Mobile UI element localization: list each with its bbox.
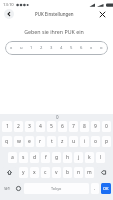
staticText: 13:10 [3,2,14,8]
staticText: 9 [94,123,97,130]
staticText: 0 [105,123,108,130]
staticText: s [22,154,25,161]
staticText: e [28,138,31,145]
staticText: 0 [56,114,59,120]
staticText: i [84,138,86,145]
staticText: q [5,138,9,145]
staticText: 5 [70,45,73,51]
button[interactable]: n [74,167,83,178]
button[interactable]: Emoji [14,183,22,194]
button[interactable]: p [102,136,111,147]
staticText: !#© [4,186,11,191]
button[interactable]: g [52,152,61,163]
button[interactable]: 1 [2,121,12,132]
staticText: p [105,138,109,145]
button[interactable]: c [41,167,50,178]
button[interactable]: 7 [69,121,78,132]
staticText: 3 [50,45,53,51]
staticText: c [44,169,47,176]
button[interactable]: e [25,136,34,147]
button[interactable]: f [41,152,50,163]
button[interactable]: m [85,167,94,178]
button[interactable]: b [63,167,72,178]
staticText: z [61,138,64,145]
staticText: 2 [40,45,43,51]
staticText: 8 [83,123,86,130]
staticText: g [55,154,59,161]
button[interactable]: 4 [36,121,45,132]
staticText: v [55,169,58,176]
staticText: 3 [28,123,31,130]
button[interactable]: v [52,167,61,178]
button[interactable]: z [58,136,67,147]
button[interactable]: 5 [47,121,56,132]
button[interactable]: i [80,136,89,147]
staticText: t [51,138,53,145]
staticText: k [88,154,91,161]
staticText: h [66,154,70,161]
staticText: n [77,169,81,176]
button[interactable]: !#© [2,183,12,194]
staticText: b [66,169,70,176]
staticText: PUK Einstellungen [35,11,74,17]
staticText: 4 [39,123,42,130]
staticText: x [10,45,13,51]
staticText: Geben sie ihren PUK ein [24,28,84,35]
button[interactable]: 9 [91,121,100,132]
button[interactable]: q [2,136,12,147]
staticText: x [33,169,36,176]
button[interactable]: s [19,152,28,163]
button[interactable]: t [47,136,56,147]
button[interactable]: 3 [25,121,34,132]
button[interactable]: . [91,183,99,194]
button[interactable]: k [85,152,94,163]
staticText: a [11,154,14,161]
staticText: o [94,138,98,145]
button[interactable]: 2 [14,121,23,132]
button[interactable]: Shift [2,167,17,178]
button[interactable]: 8 [80,121,89,132]
staticText: u [72,138,76,145]
button[interactable]: Backspace [96,167,111,178]
staticText: 1 [6,123,9,130]
staticText: r [39,138,42,145]
button[interactable]: 0 [102,121,111,132]
button[interactable]: Back [4,9,14,19]
staticText: . [94,185,96,192]
staticText: o [100,45,103,51]
button[interactable]: Tokyo [24,183,89,194]
staticText: 2 [17,123,20,130]
button[interactable]: OK [101,183,111,194]
staticText: 1 [30,45,33,51]
staticText: Tokyo [51,186,62,191]
button[interactable]: l [96,152,105,163]
button[interactable]: x [30,167,39,178]
staticText: 6 [61,123,64,130]
button[interactable]: h [63,152,72,163]
staticText: l [100,154,102,161]
staticText: w [17,138,21,145]
staticText: u [20,45,23,51]
button[interactable]: j [74,152,83,163]
staticText: f [45,154,47,161]
button[interactable]: 0 [52,113,62,121]
button[interactable]: a [8,152,17,163]
button[interactable]: Close [97,9,107,19]
button[interactable]: w [14,136,23,147]
staticText: 6 [80,45,83,51]
staticText: 7 [72,123,75,130]
button[interactable]: o [91,136,100,147]
staticText: y [22,169,25,176]
button[interactable]: r [36,136,45,147]
staticText: m [87,169,92,176]
staticText: d [33,154,37,161]
staticText: j [78,154,80,161]
staticText: 4 [60,45,63,51]
button[interactable]: y [19,167,28,178]
button[interactable]: x [5,41,108,55]
button[interactable]: 6 [58,121,67,132]
staticText: x [90,45,93,51]
button[interactable]: d [30,152,39,163]
staticText: 5 [50,123,53,130]
button[interactable]: u [69,136,78,147]
